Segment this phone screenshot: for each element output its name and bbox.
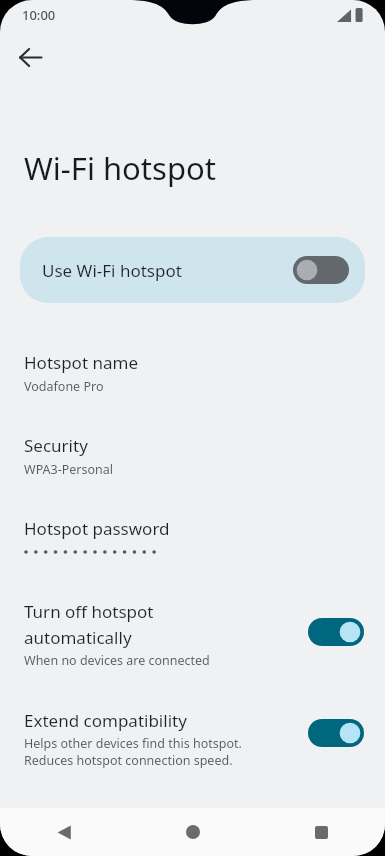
staticText: Extend compatibility bbox=[24, 709, 187, 732]
button[interactable]: Hotspot name bbox=[0, 351, 385, 395]
button[interactable]: Extend compatibility bbox=[0, 709, 385, 769]
button[interactable]: Hotspot password bbox=[0, 517, 385, 556]
button[interactable]: Recent apps bbox=[257, 808, 385, 856]
button[interactable]: Use Wi-Fi hotspot bbox=[20, 237, 365, 303]
staticText: Turn off hotspot automatically bbox=[24, 600, 154, 649]
button[interactable]: Security bbox=[0, 434, 385, 478]
staticText: Wi-Fi hotspot bbox=[24, 147, 216, 189]
staticText: Helps other devices find this hotspot. R… bbox=[24, 735, 242, 769]
staticText: When no devices are connected bbox=[24, 652, 210, 669]
staticText: Security bbox=[24, 434, 88, 457]
button[interactable]: Back bbox=[9, 36, 51, 78]
staticText: 10:00 bbox=[22, 6, 56, 24]
staticText: Hotspot password bbox=[24, 517, 170, 540]
staticText: Vodafone Pro bbox=[24, 378, 104, 395]
button[interactable]: Turn off hotspot automatically bbox=[0, 600, 385, 669]
button[interactable]: Back bbox=[0, 808, 129, 856]
staticText: Use Wi-Fi hotspot bbox=[42, 259, 293, 282]
staticText: Hotspot name bbox=[24, 351, 138, 374]
staticText: WPA3-Personal bbox=[24, 461, 114, 478]
button[interactable]: Home bbox=[129, 808, 257, 856]
